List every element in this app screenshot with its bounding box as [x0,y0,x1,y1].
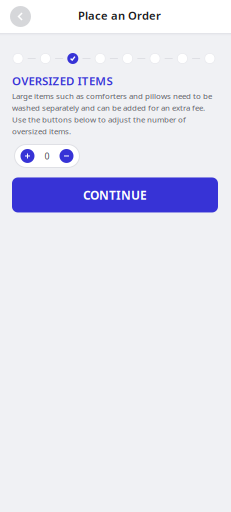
staticText: CONTINUE [83,187,147,203]
staticText: 0 [44,150,49,162]
button[interactable]: Remove oversized item [59,149,73,163]
staticText: Large items such as comforters and pillo… [12,91,212,136]
button[interactable]: CONTINUE [12,177,218,212]
staticText: OVERSIZED ITEMS [12,73,112,89]
button[interactable]: Back [6,2,35,31]
button[interactable]: Add oversized item [20,149,34,163]
staticText: Place an Order [78,8,161,23]
